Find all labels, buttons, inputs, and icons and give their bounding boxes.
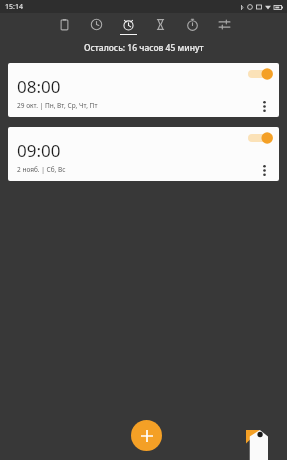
button[interactable]: 09:00 [8,127,279,181]
button[interactable]: More options [256,162,272,178]
button[interactable]: World clock [80,13,112,39]
button[interactable]: Alarm [112,13,144,39]
staticText: 15:14 [5,2,23,12]
button[interactable]: Toggle alarm [245,130,275,146]
staticText: 29 окт. | Пн, Вт, Ср, Чт, Пт [17,101,98,110]
button[interactable]: Label [246,430,268,460]
button[interactable]: Timer list [48,13,80,39]
button[interactable]: Stopwatch [176,13,208,39]
button[interactable]: Toggle alarm [245,66,275,82]
staticText: 2 нояб. | Сб, Вс [17,165,66,174]
button[interactable]: Hourglass timer [144,13,176,39]
button[interactable]: Add alarm [131,420,162,451]
button[interactable]: More options [256,98,272,114]
staticText: 09:00 [17,139,61,162]
staticText: 08:00 [17,75,61,98]
staticText: Осталось: 16 часов 45 минут [84,42,204,54]
button[interactable]: 08:00 [8,63,279,117]
button[interactable]: Settings [208,13,240,39]
